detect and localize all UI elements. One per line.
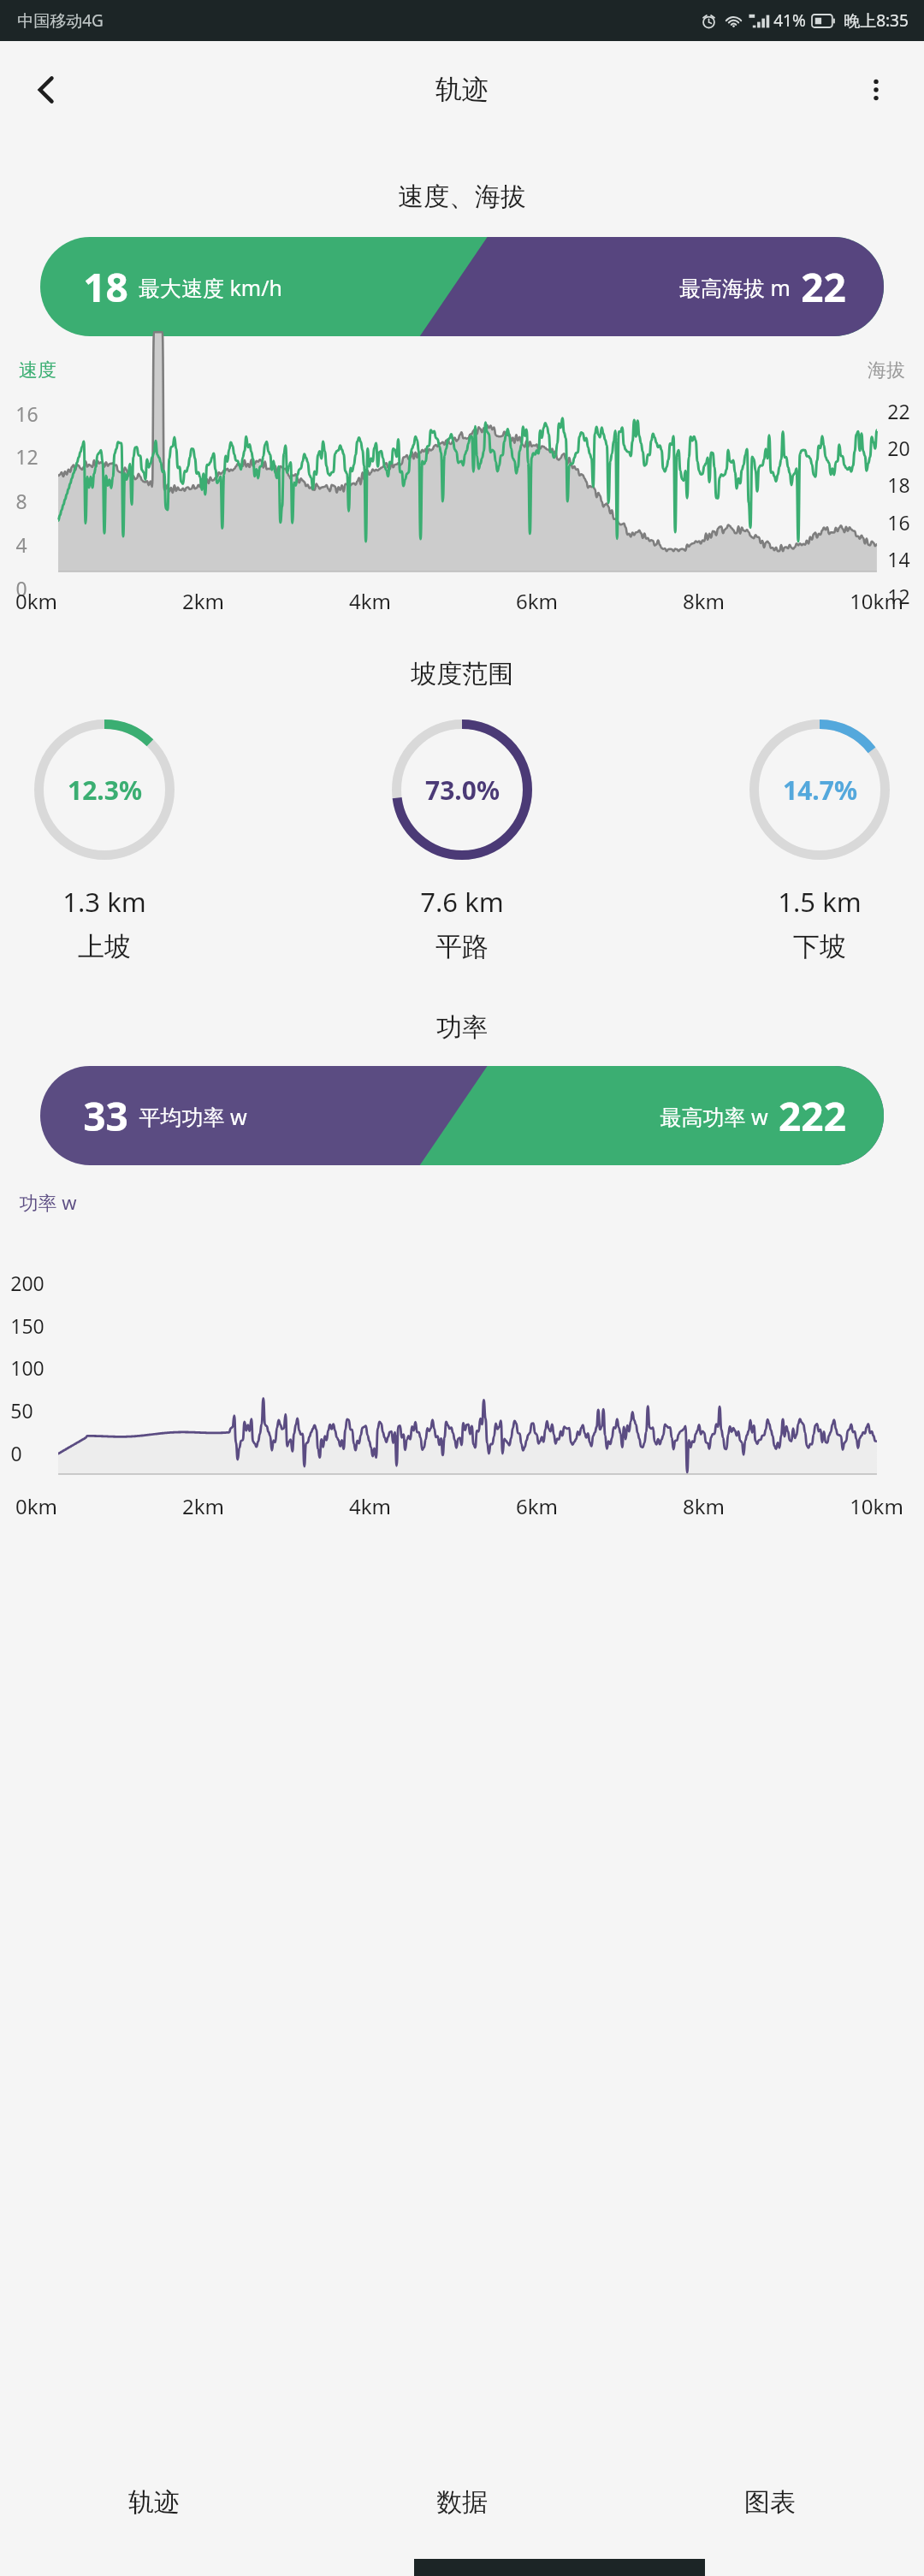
button[interactable]: 73.0% bbox=[388, 716, 536, 863]
staticText: 1.3 km bbox=[62, 884, 146, 920]
staticText: 最高功率 w bbox=[660, 1102, 768, 1131]
staticText: 10km bbox=[850, 587, 903, 615]
staticText: 上坡 bbox=[78, 930, 131, 963]
staticText: 33 bbox=[83, 1089, 128, 1143]
staticText: 100 bbox=[10, 1354, 44, 1381]
staticText: 12 bbox=[15, 443, 38, 470]
staticText: 73.0% bbox=[425, 773, 500, 808]
staticText: 4 bbox=[15, 531, 27, 558]
staticText: 海拔 bbox=[868, 358, 905, 382]
staticText: 14 bbox=[887, 546, 910, 572]
staticText: 12 bbox=[887, 583, 910, 609]
staticText: 222 bbox=[779, 1089, 846, 1143]
staticText: 18 bbox=[83, 260, 128, 314]
staticText: 平均功率 w bbox=[139, 1102, 247, 1131]
staticText: 18 bbox=[887, 471, 910, 498]
staticText: 轨迹 bbox=[128, 2486, 180, 2519]
staticText: 0 bbox=[10, 1440, 22, 1466]
button[interactable]: Back bbox=[14, 57, 79, 122]
staticText: 22 bbox=[801, 260, 846, 314]
staticText: 0km bbox=[15, 1492, 57, 1520]
staticText: 12.3% bbox=[68, 773, 142, 808]
staticText: 速度 bbox=[19, 358, 56, 382]
staticText: 中国移动4G bbox=[17, 9, 104, 32]
staticText: 速度、海拔 bbox=[398, 181, 526, 213]
staticText: 2km bbox=[182, 587, 224, 615]
button[interactable]: 18 bbox=[40, 237, 884, 336]
staticText: 数据 bbox=[436, 2486, 488, 2519]
staticText: 0 bbox=[15, 575, 27, 601]
button[interactable]: More options bbox=[844, 57, 909, 122]
staticText: 最大速度 km/h bbox=[139, 273, 282, 302]
staticText: 功率 bbox=[436, 1011, 488, 1044]
staticText: 16 bbox=[15, 400, 38, 427]
staticText: 150 bbox=[10, 1312, 44, 1339]
staticText: 6km bbox=[516, 587, 558, 615]
staticText: 50 bbox=[10, 1397, 33, 1424]
staticText: 4km bbox=[349, 587, 391, 615]
staticText: 41% bbox=[773, 9, 806, 32]
staticText: 图表 bbox=[744, 2486, 796, 2519]
staticText: 22 bbox=[887, 398, 910, 424]
staticText: 16 bbox=[887, 509, 910, 536]
staticText: 20 bbox=[887, 435, 910, 461]
staticText: 200 bbox=[10, 1270, 44, 1296]
staticText: 下坡 bbox=[793, 930, 846, 963]
staticText: 坡度范围 bbox=[411, 658, 513, 690]
staticText: 晚上8:35 bbox=[844, 9, 909, 32]
staticText: 1.5 km bbox=[778, 884, 862, 920]
staticText: 平路 bbox=[435, 930, 489, 963]
staticText: 最高海拔 m bbox=[679, 273, 791, 302]
button[interactable]: 数据 bbox=[308, 2458, 616, 2547]
staticText: 功率 w bbox=[19, 1189, 77, 1215]
staticText: 8km bbox=[683, 1492, 725, 1520]
staticText: 轨迹 bbox=[435, 73, 489, 106]
staticText: 10km bbox=[850, 1492, 903, 1520]
staticText: 8 bbox=[15, 488, 27, 514]
staticText: 8km bbox=[683, 587, 725, 615]
staticText: 0km bbox=[15, 587, 57, 615]
button[interactable]: 轨迹 bbox=[0, 2458, 308, 2547]
staticText: 4km bbox=[349, 1492, 391, 1520]
button[interactable]: 14.7% bbox=[746, 716, 893, 863]
button[interactable]: 33 bbox=[40, 1066, 884, 1165]
button[interactable]: 图表 bbox=[616, 2458, 924, 2547]
staticText: 2km bbox=[182, 1492, 224, 1520]
staticText: 6km bbox=[516, 1492, 558, 1520]
staticText: 7.6 km bbox=[420, 884, 504, 920]
staticText: 14.7% bbox=[783, 773, 857, 808]
button[interactable]: 12.3% bbox=[31, 716, 178, 863]
